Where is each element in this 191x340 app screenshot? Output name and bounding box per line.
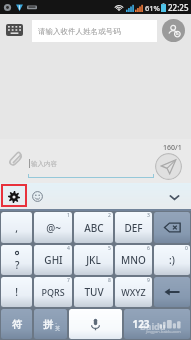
button[interactable]: Add contact xyxy=(162,19,185,42)
staticText: 7 xyxy=(67,277,70,284)
staticText: WXYZ xyxy=(121,286,146,298)
button[interactable]: 123 xyxy=(124,309,190,339)
button[interactable]: WXYZ xyxy=(115,277,152,307)
staticText: 8 xyxy=(108,277,111,284)
button[interactable]: Send xyxy=(155,153,182,180)
staticText: 输入内容 xyxy=(31,160,57,168)
staticText: 9 xyxy=(147,277,150,284)
staticText: 符 xyxy=(12,318,22,331)
staticText: 3 xyxy=(147,212,150,219)
staticText: ABC xyxy=(84,221,104,235)
button[interactable] xyxy=(154,277,190,307)
staticText: 123 xyxy=(132,317,150,331)
button[interactable]: ! xyxy=(1,277,32,307)
button[interactable]: JKL xyxy=(74,245,113,275)
staticText: 61% xyxy=(145,3,160,13)
button[interactable]: MNO xyxy=(115,245,152,275)
staticText: 拼 xyxy=(43,318,53,331)
button[interactable] xyxy=(154,212,190,243)
button[interactable]: TUV xyxy=(74,277,113,307)
staticText: DEF xyxy=(124,221,143,235)
button[interactable]: 符 xyxy=(1,309,32,339)
staticText: JKL xyxy=(86,253,101,267)
staticText: @~ xyxy=(46,221,61,235)
button[interactable]: Emoji xyxy=(29,188,45,204)
staticText: 2 xyxy=(108,212,111,219)
staticText: Baidu xyxy=(140,320,166,332)
staticText: 英 xyxy=(55,325,60,331)
button[interactable]: Settings xyxy=(3,187,25,206)
button[interactable]: :) xyxy=(154,245,190,275)
button[interactable]: 请输入收件人姓名或号码 xyxy=(32,20,157,42)
staticText: 4 xyxy=(67,245,70,252)
staticText: 请输入收件人姓名或号码 xyxy=(38,27,121,36)
button[interactable]: DEF xyxy=(115,212,152,243)
button[interactable]: Hide keyboard xyxy=(165,188,183,206)
staticText: MNO xyxy=(121,253,146,267)
button[interactable]: Keyboard xyxy=(6,24,23,36)
staticText: GHI xyxy=(44,253,63,267)
staticText: 5 xyxy=(108,245,111,252)
staticText: :) xyxy=(169,253,175,267)
staticText: , xyxy=(15,221,18,235)
staticText: PQRS xyxy=(41,286,65,298)
button[interactable]: PQRS xyxy=(34,277,72,307)
staticText: 160/1 xyxy=(163,143,182,153)
staticText: ! xyxy=(15,285,18,299)
staticText: 22:25 xyxy=(168,2,189,13)
button[interactable]: GHI xyxy=(34,245,72,275)
button[interactable]: @~ xyxy=(34,212,72,243)
staticText: 6 xyxy=(147,245,150,252)
button[interactable]: Attach xyxy=(5,147,25,167)
staticText: 1 xyxy=(67,212,70,219)
button[interactable] xyxy=(69,309,122,339)
button[interactable]: ? xyxy=(1,245,32,275)
button[interactable]: , xyxy=(1,212,32,243)
staticText: 0 xyxy=(185,245,188,252)
staticText: jingyan.baidu.com xyxy=(146,329,181,334)
staticText: TUV xyxy=(84,285,104,299)
staticText: ? xyxy=(15,258,20,272)
button[interactable]: ABC xyxy=(74,212,113,243)
staticText: 、 xyxy=(55,318,60,324)
button[interactable]: 拼 xyxy=(34,309,67,339)
